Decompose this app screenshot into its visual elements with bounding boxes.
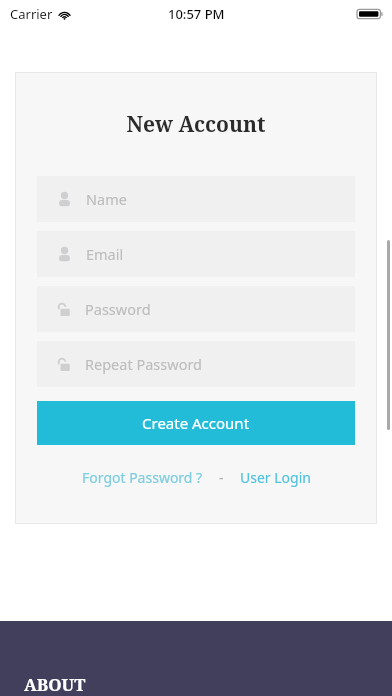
staticText: Name (86, 189, 127, 209)
staticText: Password (85, 299, 151, 319)
staticText: - (219, 468, 224, 487)
button[interactable]: User Login (238, 465, 313, 490)
staticText: 10:57 PM (168, 5, 225, 23)
staticText: ABOUT (24, 673, 86, 696)
button[interactable]: Email (37, 231, 355, 277)
button[interactable]: Create Account (37, 401, 355, 445)
staticText: New Account (15, 110, 377, 139)
staticText: Repeat Password (85, 354, 203, 374)
button[interactable]: Password (37, 286, 355, 332)
staticText: Email (86, 244, 124, 264)
staticText: Carrier (10, 5, 53, 23)
staticText: User Login (240, 468, 311, 487)
staticText: Forgot Password ? (82, 468, 203, 487)
button[interactable]: Forgot Password ? (80, 465, 205, 490)
staticText: Create Account (142, 413, 250, 433)
button[interactable]: Name (37, 176, 355, 222)
button[interactable]: Repeat Password (37, 341, 355, 387)
